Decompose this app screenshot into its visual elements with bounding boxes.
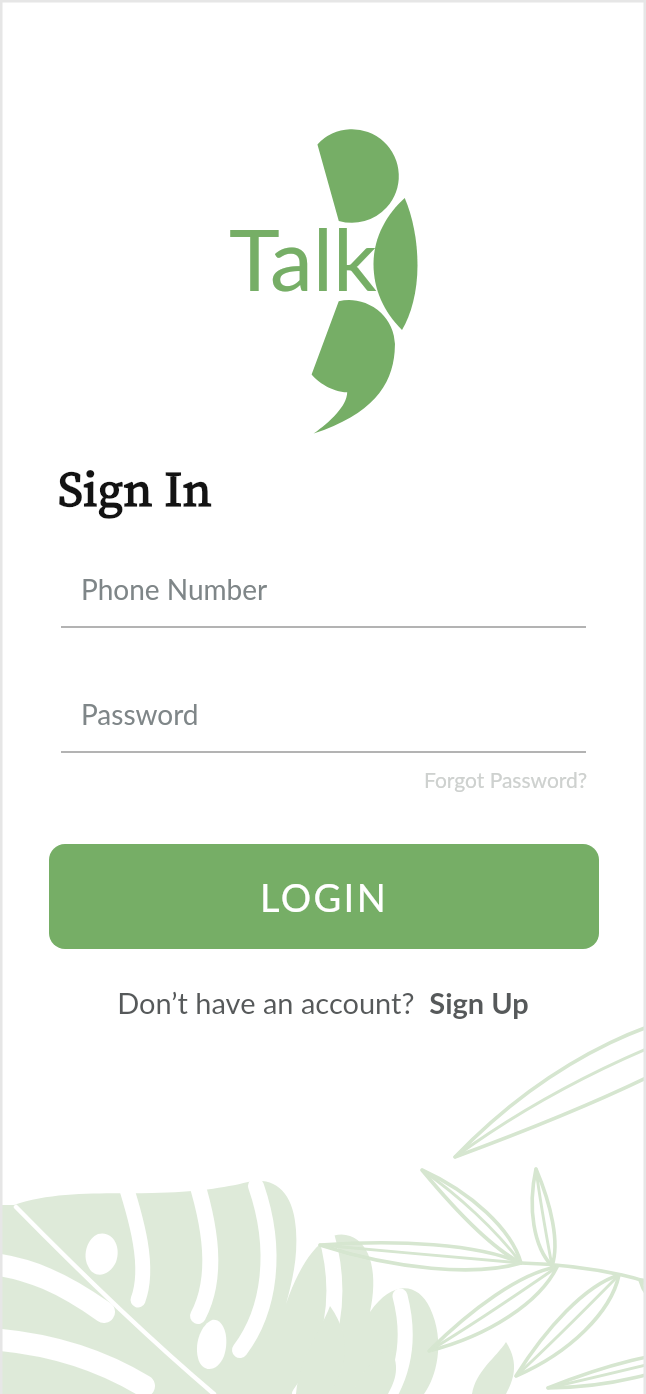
button[interactable]: LOGIN: [49, 844, 599, 949]
button[interactable]: Phone Number: [61, 562, 586, 628]
button[interactable]: Don’t have an account? Sign Up: [117, 985, 529, 1020]
staticText: Password: [81, 697, 199, 731]
button[interactable]: Password: [61, 687, 586, 753]
staticText: Talk: [229, 206, 377, 309]
staticText: Phone Number: [81, 572, 268, 606]
staticText: LOGIN: [260, 874, 389, 920]
staticText: Don’t have an account? Sign Up: [117, 985, 529, 1020]
staticText: Sign In: [58, 455, 213, 522]
staticText: Forgot Password?: [424, 767, 588, 792]
button[interactable]: Forgot Password?: [418, 761, 594, 798]
